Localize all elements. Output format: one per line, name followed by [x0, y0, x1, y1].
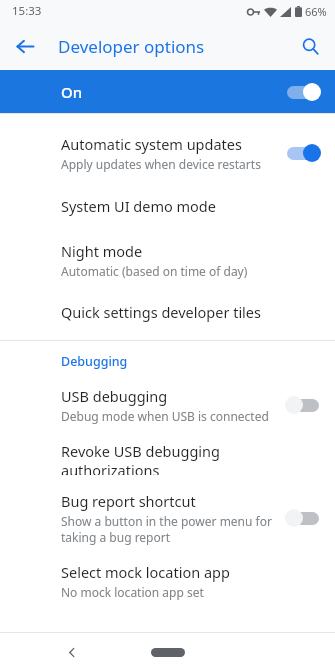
button[interactable]: Home [138, 637, 198, 667]
staticText: Show a button in the power menu for taki… [61, 513, 285, 545]
staticText: Revoke USB debugging authorizations [61, 441, 321, 475]
button[interactable]: Night mode [0, 235, 335, 285]
staticText: Apply updates when device restarts [61, 156, 261, 172]
staticText: Bug report shortcut [61, 491, 196, 511]
button[interactable]: Revoke USB debugging authorizations [0, 441, 335, 475]
staticText: Quick settings developer tiles [61, 302, 261, 322]
staticText: System UI demo mode [61, 196, 216, 216]
button[interactable]: Back [55, 635, 89, 669]
button[interactable]: Select mock location app [0, 559, 335, 603]
staticText: On [61, 82, 83, 102]
staticText: Debug mode when USB is connected [61, 408, 269, 424]
button[interactable]: USB debugging [0, 381, 335, 429]
button[interactable]: Automatic system updates [0, 127, 335, 179]
staticText: Automatic (based on time of day) [61, 263, 248, 279]
button[interactable]: Quick settings developer tiles [0, 295, 335, 329]
button[interactable]: Search [291, 27, 329, 65]
staticText: Automatic system updates [61, 134, 242, 154]
button[interactable]: System UI demo mode [0, 189, 335, 223]
staticText: Night mode [61, 241, 143, 261]
button[interactable]: Bug report shortcut [0, 487, 335, 549]
button[interactable]: Back [6, 27, 44, 65]
staticText: 15:33 [12, 3, 42, 19]
staticText: Debugging [61, 353, 128, 370]
button[interactable]: On [0, 70, 335, 113]
staticText: Select mock location app [61, 562, 230, 582]
staticText: 66% [305, 4, 327, 19]
staticText: USB debugging [61, 386, 168, 406]
staticText: No mock location app set [61, 584, 204, 600]
staticText: Developer options [58, 35, 205, 58]
